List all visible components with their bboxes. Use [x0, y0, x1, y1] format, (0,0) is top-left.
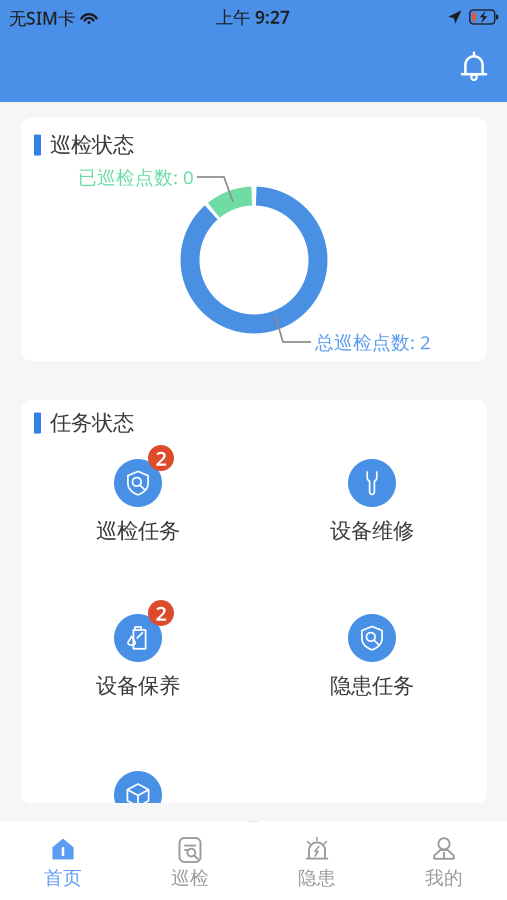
staticText: 无SIM卡 [9, 6, 75, 29]
staticText: 设备保养 [96, 673, 180, 699]
button[interactable]: 隐患任务 [21, 400, 487, 803]
staticText: 2 [155, 600, 166, 626]
staticText: 总巡检点数: 2 [315, 330, 431, 354]
button[interactable]: 通知 [451, 41, 497, 90]
staticText: 隐患 [298, 866, 336, 889]
button[interactable]: 2 [21, 400, 487, 803]
staticText: 2 [155, 445, 166, 471]
button[interactable]: 首页 [0, 821, 507, 900]
button[interactable]: 我的 [0, 821, 507, 900]
button[interactable]: 隐患 [0, 821, 507, 900]
staticText: 巡检 [171, 866, 209, 889]
button[interactable] [21, 400, 487, 803]
staticText: 上午 9:27 [216, 5, 290, 28]
staticText: 巡检任务 [96, 518, 180, 544]
button[interactable]: 巡检 [0, 821, 507, 900]
staticText: 我的 [425, 866, 463, 889]
staticText: 巡检状态 [50, 132, 134, 158]
staticText: 任务状态 [50, 410, 134, 436]
staticText: 设备维修 [330, 518, 414, 544]
button[interactable]: 设备维修 [21, 400, 487, 803]
staticText: 已巡检点数: 0 [78, 165, 194, 189]
staticText: 首页 [44, 866, 82, 889]
button[interactable]: 2 [21, 400, 487, 803]
staticText: 隐患任务 [330, 673, 414, 699]
